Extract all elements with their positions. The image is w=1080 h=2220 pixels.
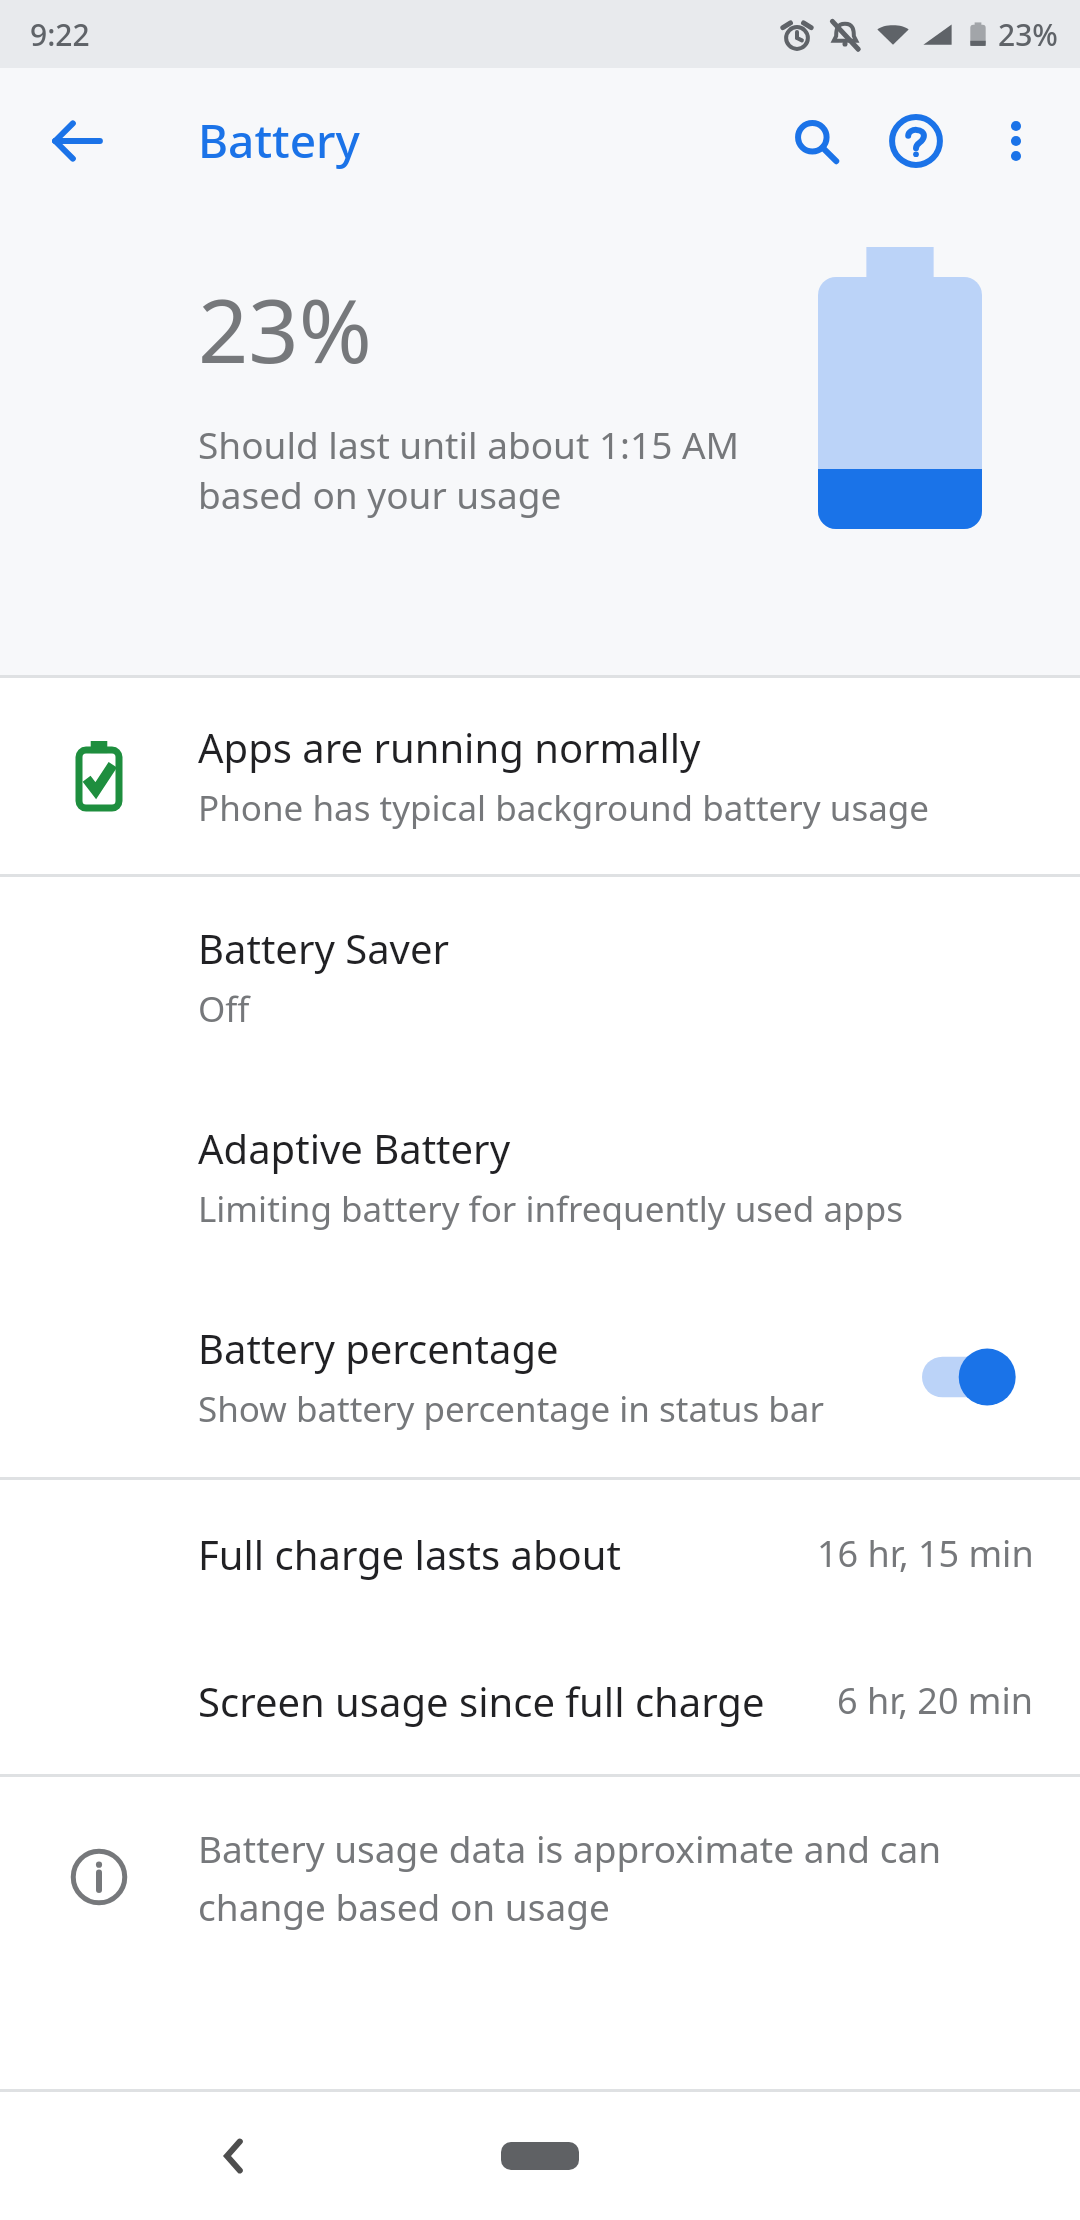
staticText: 23% (998, 14, 1058, 55)
button[interactable]: Screen usage since full charge (0, 1627, 1080, 1774)
staticText: 16 hr, 15 min (817, 1529, 1034, 1578)
staticText: Limiting battery for infrequently used a… (198, 1185, 903, 1233)
staticText: Apps are running normally (198, 720, 701, 774)
button[interactable]: Battery Saver (0, 877, 1080, 1077)
staticText: Show battery percentage in status bar (198, 1385, 824, 1433)
staticText: Phone has typical background battery usa… (198, 784, 930, 832)
staticText: 9:22 (30, 14, 90, 55)
button[interactable]: Help (866, 91, 966, 191)
staticText: based on your usage (198, 469, 562, 519)
staticText: Battery percentage (198, 1321, 559, 1375)
button[interactable]: Back (180, 2101, 290, 2211)
staticText: Battery (198, 109, 360, 172)
button[interactable]: Adaptive Battery (0, 1077, 1080, 1277)
staticText: Battery Saver (198, 921, 449, 975)
staticText: Should last until about 1:15 AM (198, 419, 740, 469)
staticText: Off (198, 985, 250, 1033)
button[interactable]: Search (766, 91, 866, 191)
button[interactable]: Home (480, 2121, 600, 2191)
staticText: Adaptive Battery (198, 1121, 511, 1175)
button[interactable]: Battery percentage (0, 1277, 1080, 1477)
button[interactable]: Back (28, 92, 126, 190)
staticText: Screen usage since full charge (198, 1674, 765, 1728)
button[interactable]: More options (966, 91, 1066, 191)
staticText: 23% (198, 269, 372, 389)
staticText: Full charge lasts about (198, 1527, 621, 1581)
staticText: Battery usage data is approximate and ca… (198, 1823, 942, 1873)
staticText: change based on usage (198, 1881, 610, 1931)
button[interactable]: Apps are running normally (0, 678, 1080, 874)
button[interactable]: Full charge lasts about (0, 1480, 1080, 1627)
staticText: 6 hr, 20 min (837, 1676, 1034, 1725)
